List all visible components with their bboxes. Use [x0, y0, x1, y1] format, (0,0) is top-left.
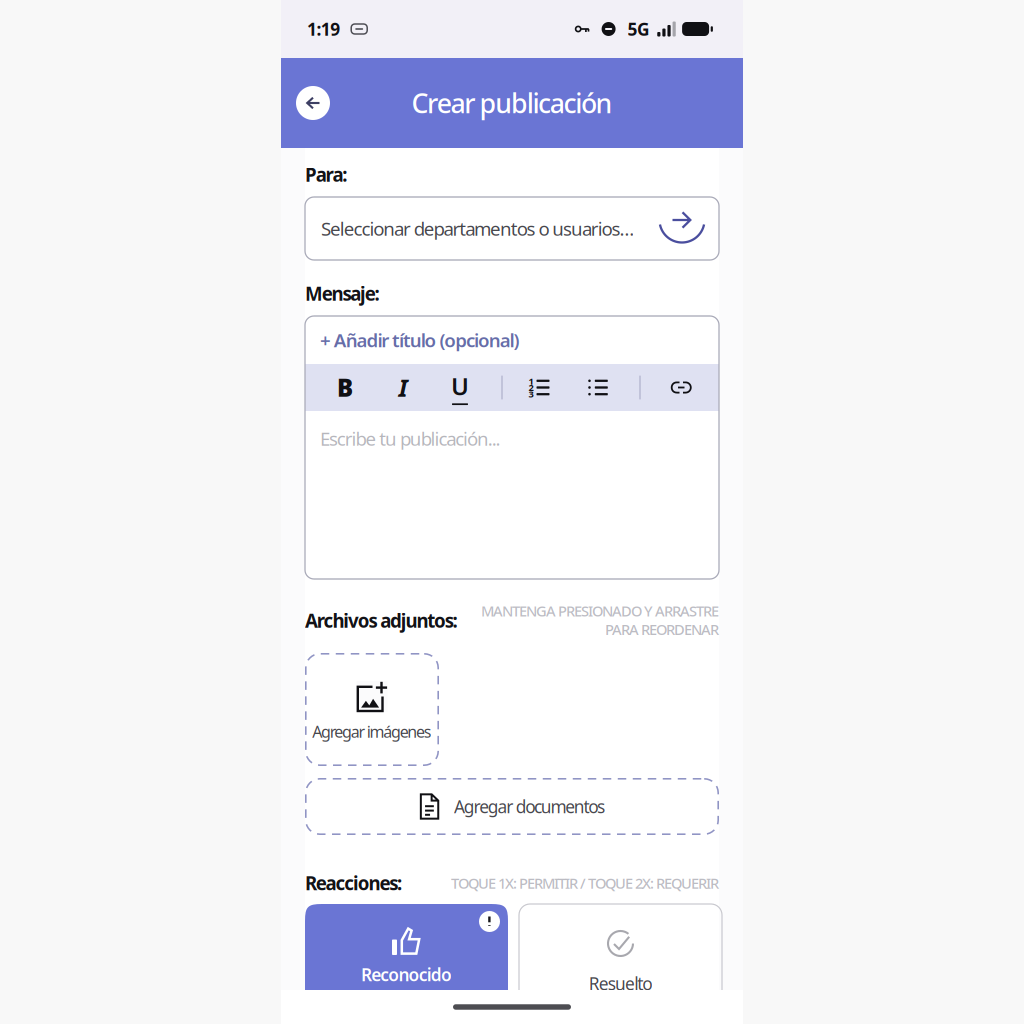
staticText: TOQUE 1X: PERMITIR / TOQUE 2X: REQUERIR — [451, 873, 719, 893]
staticText: + Añadir título (opcional) — [320, 328, 519, 352]
staticText: 5G — [628, 17, 650, 40]
button[interactable]: Agregar documentos — [305, 778, 719, 835]
staticText: Resuelto — [589, 972, 652, 995]
staticText: Agregar documentos — [454, 795, 605, 818]
staticText: U — [451, 370, 469, 402]
staticText: 3 — [528, 388, 533, 400]
staticText: Para: — [305, 162, 347, 187]
staticText: 2 — [528, 381, 533, 394]
staticText: 1:19 — [307, 17, 340, 40]
button[interactable]: Reconocido — [305, 904, 508, 1024]
button[interactable]: Underline — [421, 364, 499, 411]
staticText: Agregar imágenes — [312, 721, 432, 742]
staticText: MANTENGA PRESIONADO Y ARRASTRE — [481, 601, 719, 620]
button[interactable]: + Añadir título (opcional) — [305, 316, 719, 364]
staticText: B — [337, 372, 353, 403]
button[interactable]: Italic — [385, 364, 421, 411]
staticText: Reconocido — [361, 963, 452, 986]
button[interactable]: Bulleted list — [573, 364, 623, 411]
staticText: I — [398, 372, 407, 403]
button[interactable]: Resuelto — [519, 904, 722, 1024]
button[interactable]: Agregar imágenes — [305, 653, 439, 766]
staticText: Crear publicación — [411, 85, 613, 121]
staticText: Archivos adjuntos: — [305, 608, 458, 633]
staticText: Mensaje: — [305, 281, 380, 306]
staticText: PARA REORDENAR — [605, 619, 719, 639]
staticText: Seleccionar departamentos o usuarios… — [321, 216, 634, 241]
staticText: Escribe tu publicación... — [320, 426, 501, 451]
button[interactable]: Seleccionar departamentos o usuarios… — [305, 197, 719, 260]
button[interactable]: Insert link — [657, 364, 705, 411]
staticText: Reacciones: — [305, 871, 402, 895]
staticText: 1 — [528, 375, 533, 387]
button[interactable]: Numbered list — [505, 364, 573, 411]
button[interactable]: Bold — [305, 364, 385, 411]
button[interactable]: Back — [290, 80, 336, 126]
